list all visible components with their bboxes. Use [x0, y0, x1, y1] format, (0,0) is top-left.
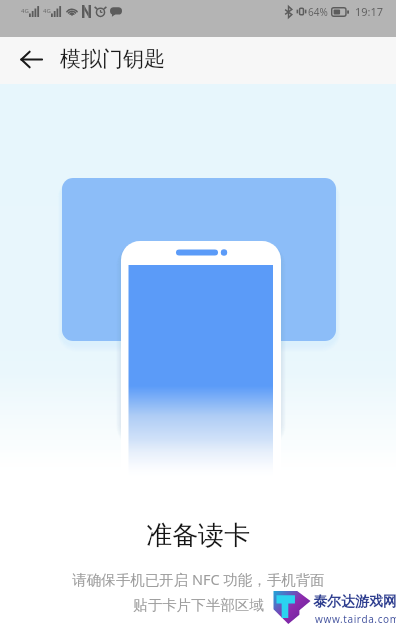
staticText: 4G — [43, 7, 51, 15]
staticText: 模拟门钥匙 — [60, 46, 165, 72]
staticText: 64% — [308, 5, 328, 19]
button[interactable]: Back — [9, 37, 53, 81]
staticText: 请确保手机已开启 NFC 功能，手机背面 贴于卡片下半部区域 — [72, 569, 325, 614]
staticText: 准备读卡 — [146, 519, 250, 552]
staticText: 4G — [21, 7, 29, 15]
staticText: www.tairda.com — [315, 612, 396, 626]
staticText: 泰尔达游戏网 — [313, 593, 396, 611]
staticText: 19:17 — [355, 4, 384, 19]
